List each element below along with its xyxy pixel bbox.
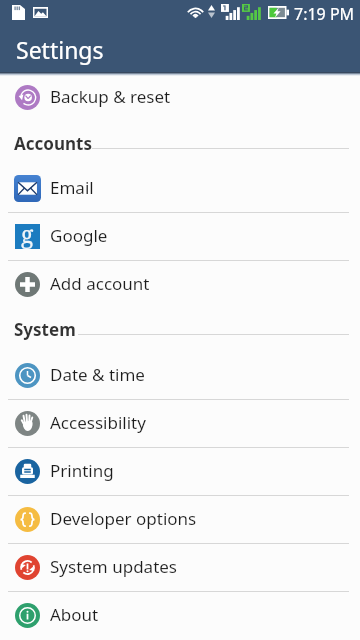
button[interactable]: g (0, 212, 360, 260)
staticText: Google (50, 224, 108, 247)
staticText: Add account (50, 272, 150, 295)
staticText: Email (50, 176, 94, 199)
button[interactable]: About (0, 591, 360, 639)
button[interactable]: Email (0, 164, 360, 212)
staticText: g (21, 218, 34, 249)
staticText: Backup & reset (50, 85, 171, 108)
staticText: About (50, 603, 99, 626)
button[interactable]: System updates (0, 543, 360, 591)
button[interactable]: Add account (0, 260, 360, 308)
button[interactable]: Developer options (0, 495, 360, 543)
staticText: Accessibility (50, 411, 146, 434)
staticText: Date & time (50, 363, 145, 386)
button[interactable]: Printing (0, 447, 360, 495)
button[interactable]: Accessibility (0, 399, 360, 447)
staticText: 7:19 PM (294, 3, 355, 25)
staticText: Settings (16, 34, 104, 65)
staticText: Developer options (50, 507, 197, 530)
staticText: Printing (50, 459, 114, 482)
button[interactable]: Backup & reset (0, 73, 360, 121)
staticText: System (14, 318, 76, 341)
staticText: System updates (50, 555, 178, 578)
staticText: Accounts (14, 132, 92, 155)
button[interactable]: Date & time (0, 351, 360, 399)
